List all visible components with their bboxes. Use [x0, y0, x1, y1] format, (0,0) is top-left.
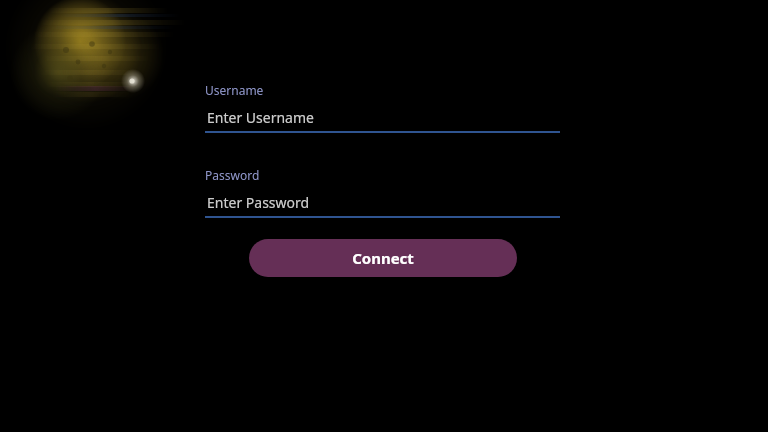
staticText: Connect — [352, 248, 414, 268]
staticText: Username — [205, 82, 264, 98]
staticText: Enter Password — [207, 193, 310, 212]
button[interactable]: Enter Password — [205, 193, 560, 218]
staticText: Password — [205, 167, 260, 183]
button[interactable]: Enter Username — [205, 108, 560, 133]
button[interactable]: Connect — [249, 239, 517, 277]
staticText: Enter Username — [207, 108, 314, 127]
